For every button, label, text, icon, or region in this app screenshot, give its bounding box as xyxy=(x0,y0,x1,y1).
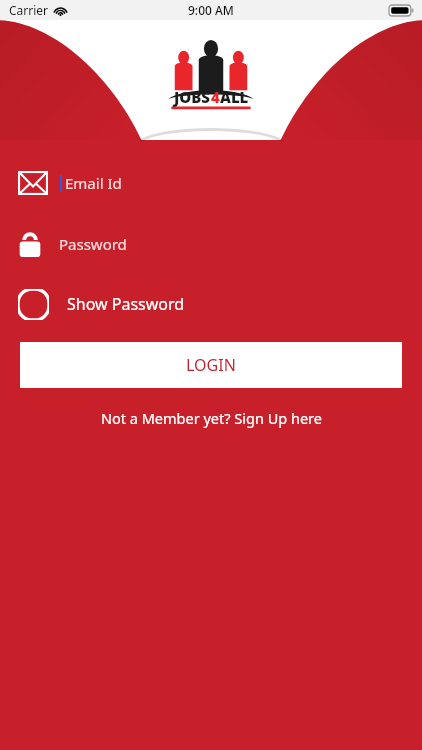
staticText: Not a Member yet? Sign Up here xyxy=(101,408,322,428)
staticText: LOGIN xyxy=(186,354,236,376)
button[interactable]: Show Password xyxy=(0,282,422,326)
staticText: Show Password xyxy=(67,293,185,315)
staticText: Carrier xyxy=(9,2,49,18)
staticText: 4 xyxy=(211,87,220,107)
staticText: Email Id xyxy=(65,173,122,193)
button[interactable]: Password xyxy=(0,221,422,267)
staticText: JOBS xyxy=(174,87,211,107)
staticText: 9:00 AM xyxy=(188,2,234,18)
staticText: Password xyxy=(59,234,127,254)
button[interactable]: Email Id xyxy=(0,160,422,206)
button[interactable]: LOGIN xyxy=(20,342,402,388)
staticText: ALL xyxy=(220,87,249,107)
button[interactable]: Not a Member yet? Sign Up here xyxy=(0,408,422,428)
